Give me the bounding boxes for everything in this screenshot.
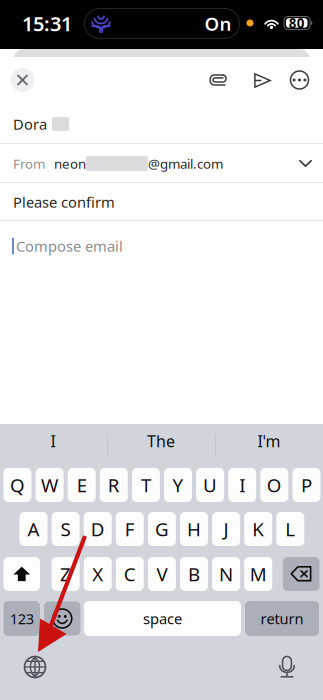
button[interactable]: C xyxy=(116,557,144,591)
staticText: Dora xyxy=(13,114,47,134)
button[interactable]: Attach file xyxy=(198,61,236,99)
staticText: E xyxy=(77,473,87,497)
button[interactable]: P xyxy=(292,468,320,502)
staticText: X xyxy=(92,562,103,586)
staticText: L xyxy=(285,517,295,541)
button[interactable]: G xyxy=(148,512,176,546)
button[interactable]: W xyxy=(36,468,64,502)
button[interactable]: Next keyboard xyxy=(15,647,55,687)
button[interactable]: J xyxy=(212,512,240,546)
staticText: Compose email xyxy=(16,236,123,256)
staticText: 80 xyxy=(289,14,305,32)
button[interactable]: Q xyxy=(3,468,31,502)
staticText: Y xyxy=(172,473,183,497)
button[interactable]: From xyxy=(0,144,323,183)
staticText: I xyxy=(239,473,245,497)
staticText: space xyxy=(143,609,182,628)
button[interactable]: E xyxy=(68,468,96,502)
button[interactable]: T xyxy=(132,468,160,502)
staticText: O xyxy=(267,473,282,497)
button[interactable]: Dora xyxy=(0,105,323,143)
button[interactable]: B xyxy=(180,557,208,591)
button[interactable]: V xyxy=(148,557,176,591)
button[interactable]: D xyxy=(84,512,112,546)
button[interactable]: F xyxy=(116,512,144,546)
staticText: S xyxy=(61,517,71,541)
button[interactable]: O xyxy=(260,468,288,502)
button[interactable]: More options xyxy=(280,61,318,99)
button[interactable]: M xyxy=(244,557,272,591)
button[interactable]: Send xyxy=(243,61,281,99)
staticText: U xyxy=(203,473,217,497)
staticText: Q xyxy=(10,473,25,497)
button[interactable]: Y xyxy=(164,468,192,502)
staticText: H xyxy=(187,517,201,541)
staticText: 15:31 xyxy=(22,10,72,37)
button[interactable]: L xyxy=(276,512,304,546)
button[interactable]: A xyxy=(19,512,47,546)
staticText: On xyxy=(204,11,231,36)
staticText: M xyxy=(250,562,267,586)
staticText: @gmail.com xyxy=(148,155,223,172)
button[interactable]: 123 xyxy=(3,601,40,636)
staticText: I'm xyxy=(257,430,280,452)
button[interactable]: The xyxy=(108,424,214,458)
staticText: B xyxy=(188,562,200,586)
button[interactable]: K xyxy=(244,512,272,546)
button[interactable]: H xyxy=(180,512,208,546)
button[interactable]: Dictate xyxy=(267,647,307,687)
staticText: Z xyxy=(60,562,71,586)
staticText: I xyxy=(50,430,55,452)
button[interactable]: I'm xyxy=(216,424,322,458)
button[interactable]: space xyxy=(84,601,241,636)
staticText: V xyxy=(156,562,167,586)
button[interactable]: Z xyxy=(52,557,80,591)
button[interactable]: return xyxy=(245,601,319,636)
button[interactable]: Emoji xyxy=(44,601,80,635)
staticText: C xyxy=(124,562,136,586)
staticText: From xyxy=(13,155,45,172)
staticText: neon xyxy=(54,155,86,172)
staticText: T xyxy=(141,473,151,497)
staticText: return xyxy=(260,609,303,628)
staticText: R xyxy=(108,473,120,497)
staticText: P xyxy=(301,473,312,497)
button[interactable]: S xyxy=(52,512,80,546)
staticText: N xyxy=(219,562,233,586)
staticText: G xyxy=(155,517,169,541)
button[interactable]: U xyxy=(196,468,224,502)
button[interactable]: Delete xyxy=(283,557,319,591)
staticText: The xyxy=(147,430,175,452)
button[interactable]: I xyxy=(228,468,256,502)
button[interactable]: X xyxy=(84,557,112,591)
staticText: Please confirm xyxy=(13,192,115,212)
button[interactable]: Please confirm xyxy=(0,183,323,221)
button[interactable]: I xyxy=(0,424,106,458)
staticText: K xyxy=(252,517,264,541)
button[interactable]: Shift xyxy=(3,557,40,591)
staticText: F xyxy=(125,517,135,541)
staticText: D xyxy=(91,517,105,541)
staticText: W xyxy=(41,473,58,497)
button[interactable]: R xyxy=(100,468,128,502)
staticText: A xyxy=(27,517,39,541)
button[interactable]: Close xyxy=(0,60,44,100)
staticText: J xyxy=(224,517,229,541)
staticText: 123 xyxy=(10,609,34,628)
button[interactable]: N xyxy=(212,557,240,591)
